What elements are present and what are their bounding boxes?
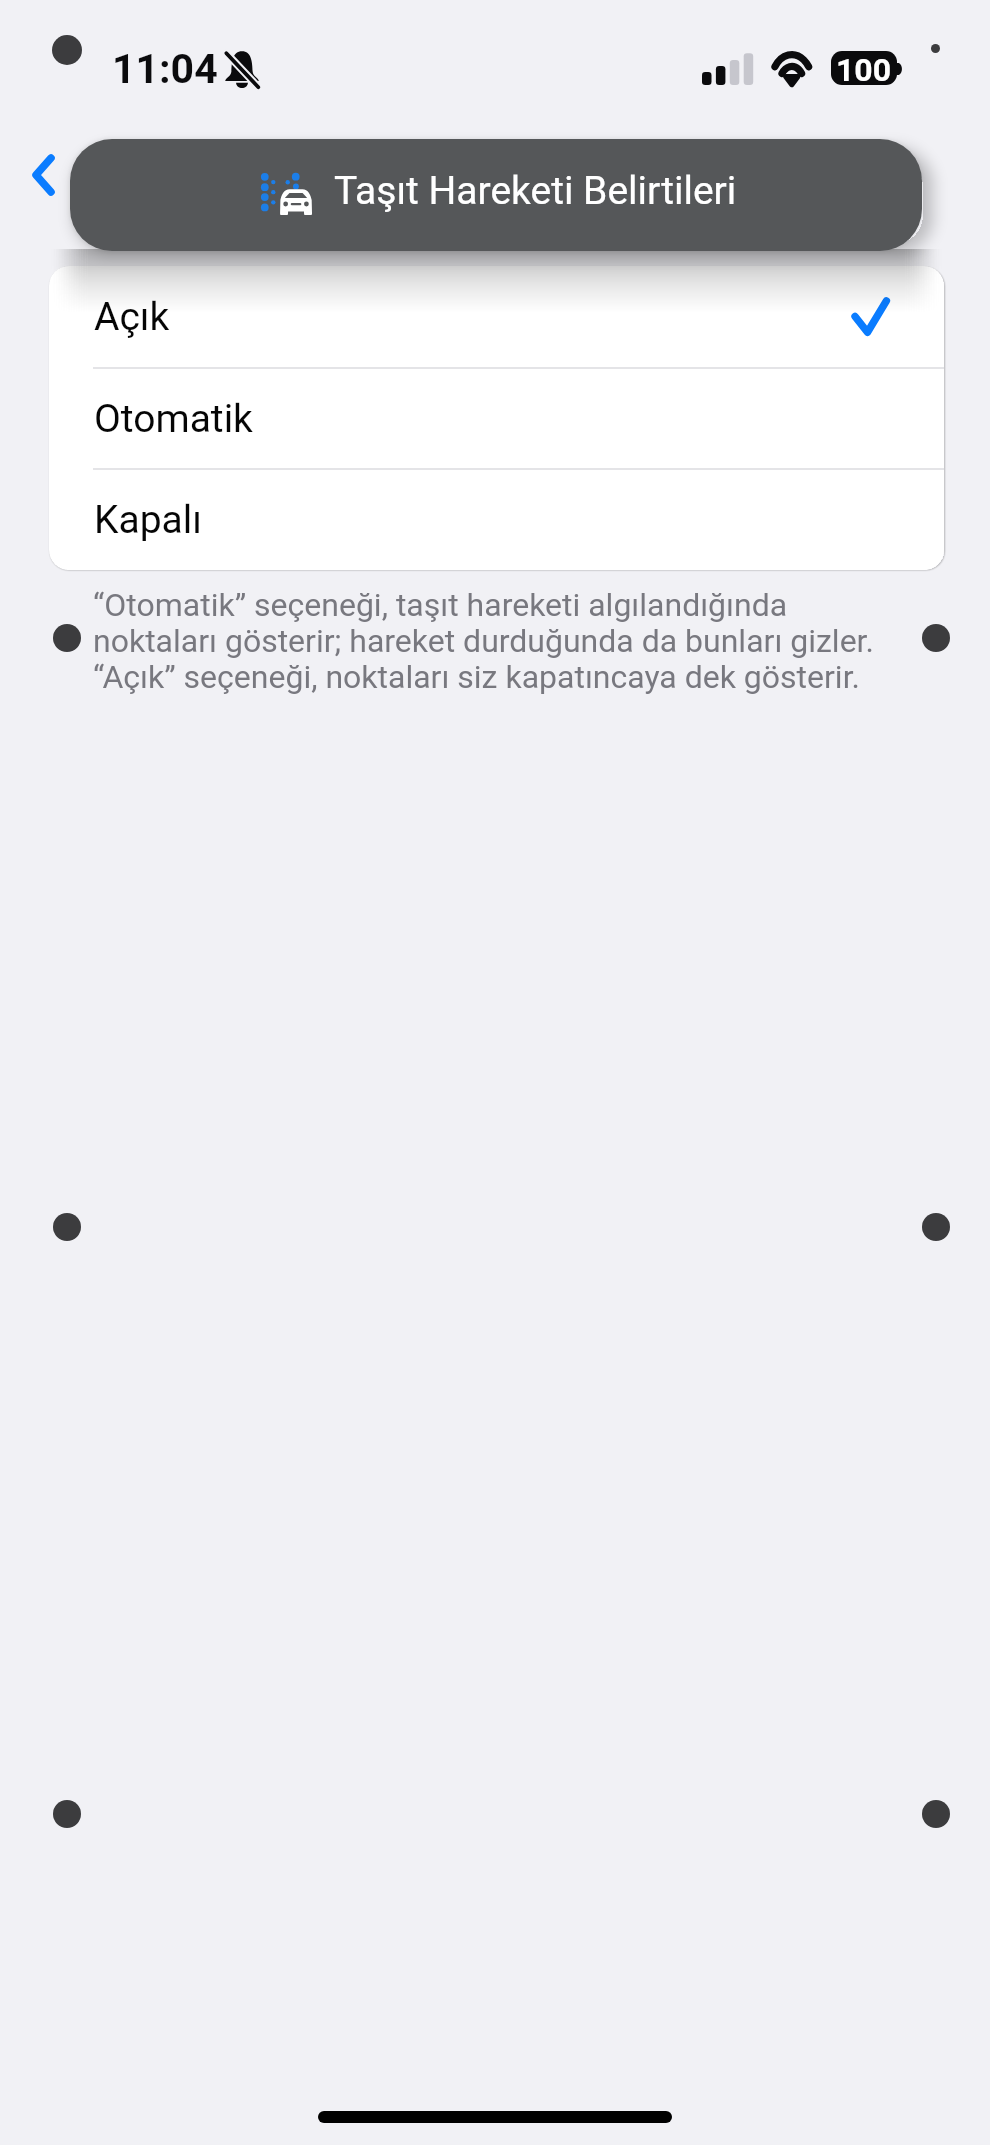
staticText: Otomatik xyxy=(94,396,253,442)
staticText: Açık xyxy=(94,294,170,340)
staticText: 100 xyxy=(836,51,892,85)
button[interactable]: Taşıt Hareketi Belirtileri xyxy=(70,139,922,251)
staticText: 11:04 xyxy=(112,45,218,93)
button[interactable]: Otomatik xyxy=(49,369,944,468)
staticText: “Otomatik” seçeneği, taşıt hareketi algı… xyxy=(93,586,874,695)
staticText: Taşıt Hareketi Belirtileri xyxy=(334,168,737,214)
staticText: Kapalı xyxy=(94,497,202,543)
button[interactable]: Back xyxy=(10,141,78,209)
button[interactable]: Açık xyxy=(49,266,944,367)
button[interactable]: Kapalı xyxy=(49,470,944,570)
